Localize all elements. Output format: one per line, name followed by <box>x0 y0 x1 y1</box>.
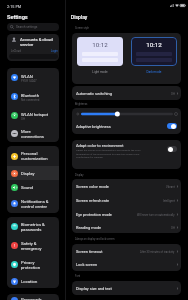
staticText: Automatic switching <box>76 91 112 96</box>
button[interactable]: Personal customization <box>7 146 59 166</box>
button[interactable]: Display <box>7 166 59 180</box>
staticText: Screen timeout <box>76 249 103 254</box>
staticText: Display <box>75 174 84 177</box>
button[interactable]: Safety & emergency <box>7 236 59 255</box>
staticText: Lock screen <box>76 262 98 267</box>
staticText: Safety & emergency <box>21 241 42 251</box>
button[interactable]: Search settings <box>7 23 59 31</box>
button[interactable]: Adapt color to environment <box>72 140 181 169</box>
staticText: Screen style <box>75 27 89 30</box>
staticText: Screen refresh rate <box>76 198 110 203</box>
staticText: Settings <box>7 14 28 21</box>
button[interactable]: Passwords <box>7 294 59 300</box>
button[interactable]: Location <box>7 274 59 288</box>
staticText: WLAN hotspot <box>21 112 49 117</box>
button[interactable]: Screen timeout <box>72 244 181 258</box>
staticText: Biometrics & passwords <box>21 222 45 232</box>
button[interactable]: WLAN <box>7 68 59 87</box>
staticText: 10:12 <box>77 41 123 48</box>
button[interactable]: Brightness <box>76 110 178 118</box>
staticText: LeCloud <box>11 49 21 52</box>
staticText: Off <box>171 226 175 229</box>
button[interactable]: Biometrics & passwords <box>7 217 59 236</box>
button[interactable]: Automatic switching <box>72 86 181 100</box>
button[interactable]: Adaptive brightness <box>72 120 181 132</box>
staticText: Display <box>71 14 88 20</box>
staticText: Location <box>21 279 38 284</box>
staticText: Accounts & cloud service <box>20 37 53 47</box>
staticText: 10:12 <box>131 41 177 48</box>
staticText: Personal customization <box>21 151 48 161</box>
staticText: Display size and text <box>76 286 112 291</box>
staticText: Vibrant <box>166 185 175 188</box>
button[interactable]: Screen refresh rate <box>72 193 181 207</box>
staticText: Adapt color to environment <box>76 143 124 148</box>
button[interactable]: Sound <box>7 180 59 194</box>
staticText: Eye protection mode <box>76 212 112 217</box>
staticText: More connections <box>21 129 44 139</box>
staticText: Brightness <box>75 103 88 106</box>
button[interactable]: 10:12 <box>77 37 123 80</box>
button[interactable]: Toggle on <box>167 123 177 129</box>
button[interactable]: Privacy protection <box>7 255 59 274</box>
button[interactable]: 10:12 <box>131 37 177 80</box>
staticText: Light mode <box>77 70 123 74</box>
staticText: Not connected <box>21 98 40 101</box>
staticText: After 30 minutes of inactivity <box>140 250 175 253</box>
staticText: Reading mode <box>76 225 102 230</box>
staticText: Search settings <box>16 25 38 29</box>
staticText: Screen color mode <box>76 184 109 189</box>
staticText: Always on display and lock screen <box>75 238 115 241</box>
button[interactable]: Toggle off <box>167 146 177 152</box>
button[interactable]: WLAN hotspot <box>7 106 59 125</box>
button[interactable]: Reading mode <box>72 221 181 233</box>
button[interactable]: More connections <box>7 125 59 142</box>
staticText: Font <box>75 275 81 278</box>
button[interactable]: Screen color mode <box>72 179 181 193</box>
staticText: Notifications & control center <box>21 199 49 209</box>
button[interactable]: Bluetooth <box>7 87 59 106</box>
staticText: Dark mode <box>131 70 177 74</box>
staticText: Bluetooth <box>21 93 39 98</box>
staticText: Adaptive brightness <box>76 124 111 129</box>
staticText: Will never turn on automatically <box>137 213 175 216</box>
button[interactable]: Accounts & cloud service <box>7 34 59 61</box>
button[interactable]: Display size and text <box>72 281 181 295</box>
staticText: Privacy protection <box>21 260 40 270</box>
staticText: Intelligent <box>163 199 175 202</box>
staticText: Passwords <box>21 297 42 300</box>
staticText: WLAN <box>21 74 33 79</box>
staticText: Display <box>21 171 35 176</box>
staticText: Sound <box>21 185 33 190</box>
staticText: Adjust the screen color temperature acco… <box>76 149 142 158</box>
staticText: 2:15 PM <box>7 4 22 8</box>
staticText: Login <box>51 49 58 52</box>
button[interactable]: Eye protection mode <box>72 207 181 221</box>
staticText: PYUR 140A7 <box>21 79 37 82</box>
staticText: Off <box>171 92 175 95</box>
button[interactable]: Lock screen <box>72 258 181 271</box>
staticText: Off <box>21 117 25 120</box>
button[interactable]: Notifications & control center <box>7 194 59 213</box>
